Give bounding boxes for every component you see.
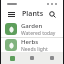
- button[interactable]: Search: [47, 9, 58, 20]
- button[interactable]: Garden: [1, 21, 63, 37]
- button[interactable]: Home: [3, 52, 21, 64]
- staticText: Watered today: [21, 30, 56, 37]
- staticText: Plants: [22, 9, 44, 19]
- button[interactable]: Browse: [23, 52, 41, 64]
- staticText: Garden: [21, 22, 43, 30]
- staticText: Needs light: [21, 46, 48, 52]
- button[interactable]: Menu: [6, 9, 17, 20]
- button[interactable]: Profile: [43, 52, 61, 64]
- button[interactable]: Herbs: [1, 38, 63, 52]
- staticText: Herbs: [21, 38, 39, 46]
